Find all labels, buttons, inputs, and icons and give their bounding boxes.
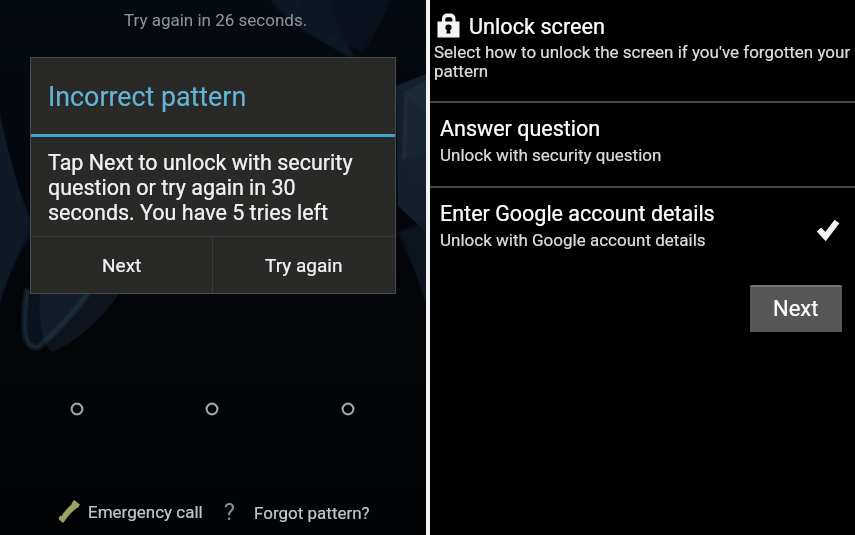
staticText: Unlock with Google account details (440, 230, 706, 250)
staticText: Try again (265, 254, 343, 276)
staticText: Next (773, 296, 819, 322)
staticText: Incorrect pattern (48, 81, 247, 112)
staticText: Forgot pattern? (254, 503, 370, 523)
staticText: Select how to unlock the screen if you'v… (434, 42, 851, 82)
staticText: Tap Next to unlock with security questio… (48, 150, 353, 225)
button[interactable]: Emergency call (58, 499, 203, 525)
button[interactable]: Answer question (430, 103, 855, 187)
staticText: ? (224, 499, 235, 526)
button[interactable]: Next (31, 237, 212, 293)
button[interactable]: Try again (213, 237, 395, 293)
button[interactable]: Enter Google account details (430, 188, 855, 272)
staticText: Next (102, 254, 142, 276)
other: Lock (436, 12, 464, 40)
staticText: Unlock with security question (440, 145, 662, 165)
other: Emergency call (58, 497, 84, 523)
staticText: Try again in 26 seconds. (124, 10, 308, 30)
staticText: Answer question (440, 116, 601, 141)
staticText: Unlock screen (469, 14, 606, 39)
staticText: Enter Google account details (440, 201, 715, 226)
button[interactable]: Next (750, 285, 842, 332)
button[interactable]: ? (224, 499, 370, 526)
staticText: Emergency call (88, 502, 203, 522)
